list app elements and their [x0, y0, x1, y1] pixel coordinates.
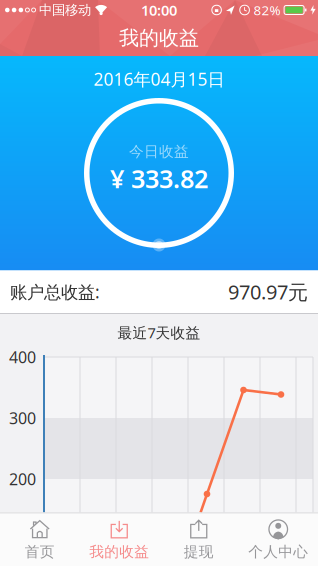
staticText: 82%	[254, 1, 281, 19]
staticText: 今日收益	[129, 143, 189, 161]
staticText: 提现	[184, 543, 214, 561]
staticText: 账户总收益:	[10, 280, 100, 303]
button[interactable]: 个人中心	[238, 513, 318, 565]
staticText: 400	[9, 346, 36, 368]
staticText: 个人中心	[248, 543, 308, 561]
staticText: 2016年04月15日	[93, 67, 224, 90]
staticText: 我的收益	[89, 543, 149, 561]
button[interactable]: 首页	[0, 513, 79, 565]
staticText: 首页	[25, 543, 55, 561]
staticText: 我的收益	[119, 26, 199, 50]
staticText: 300	[9, 407, 36, 429]
staticText: 10:00	[141, 0, 177, 20]
staticText: ¥ 333.82	[110, 162, 208, 195]
button[interactable]: 提现	[159, 513, 238, 565]
staticText: 200	[9, 468, 36, 490]
button[interactable]: 我的收益	[79, 513, 159, 565]
staticText: 最近7天收益	[117, 323, 200, 342]
staticText: 970.97元	[228, 278, 308, 305]
staticText: 中国移动	[39, 2, 91, 18]
